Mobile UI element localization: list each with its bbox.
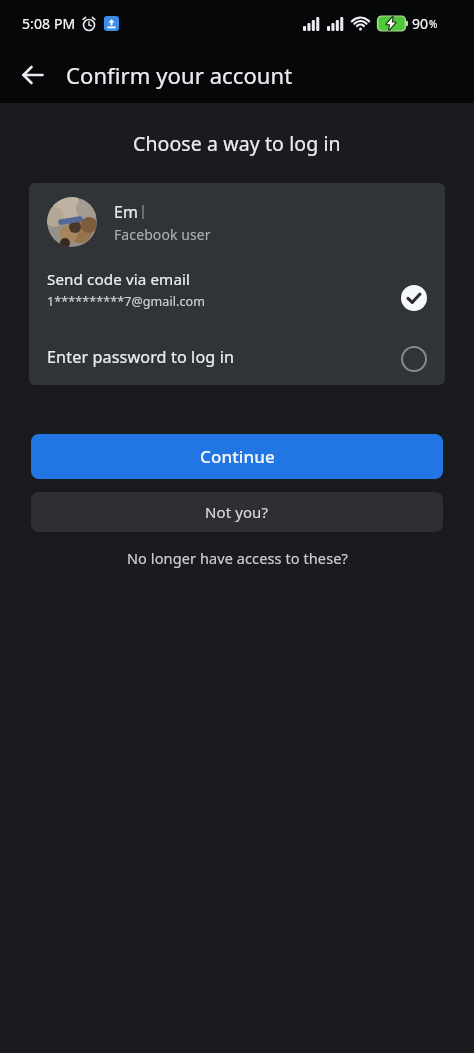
button[interactable]: No longer have access to these?	[127, 548, 348, 568]
staticText: No longer have access to these?	[127, 548, 348, 568]
staticText: Enter password to log in	[47, 346, 235, 368]
staticText: Choose a way to log in	[133, 130, 341, 157]
button[interactable]: Em	[47, 197, 211, 247]
staticText: 90	[412, 14, 429, 33]
button[interactable]: Not you?	[31, 492, 443, 532]
staticText: Continue	[200, 445, 275, 468]
button[interactable]: Enter password to log in	[47, 342, 427, 372]
staticText: Send code via email	[47, 269, 191, 290]
staticText: 1**********7@gmail.com	[47, 293, 206, 310]
staticText: Confirm your account	[66, 60, 293, 90]
button[interactable]: Send code via email	[47, 267, 427, 311]
button[interactable]	[11, 53, 55, 97]
staticText: Facebook user	[114, 225, 211, 244]
button[interactable]: Continue	[31, 434, 443, 479]
staticText: 5:08 PM	[22, 14, 76, 33]
staticText: Em	[114, 201, 139, 223]
staticText: %	[429, 17, 438, 31]
staticText: Not you?	[205, 502, 269, 522]
